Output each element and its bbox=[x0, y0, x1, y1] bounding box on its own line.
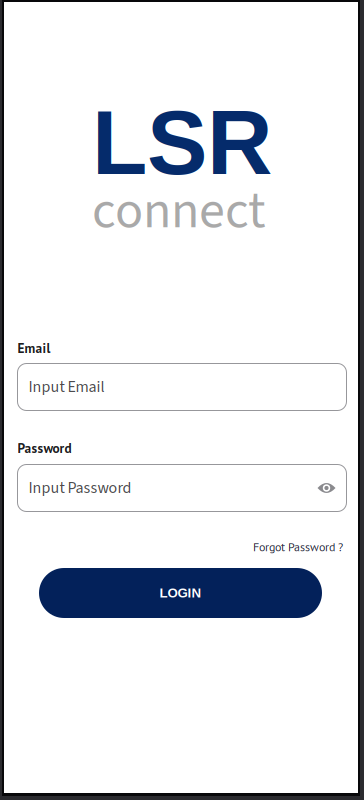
button[interactable]: LOGIN bbox=[39, 568, 322, 618]
button[interactable]: Forgot Password ? bbox=[253, 539, 343, 554]
staticText: LSR bbox=[92, 92, 272, 193]
staticText: Input Email bbox=[28, 376, 104, 398]
button[interactable]: Show password bbox=[317, 481, 335, 494]
staticText: Input Password bbox=[28, 477, 131, 499]
staticText: LOGIN bbox=[159, 586, 201, 600]
staticText: Password bbox=[17, 439, 71, 457]
staticText: connect bbox=[92, 174, 266, 248]
staticText: Email bbox=[17, 339, 50, 357]
staticText: Forgot Password ? bbox=[253, 539, 343, 554]
